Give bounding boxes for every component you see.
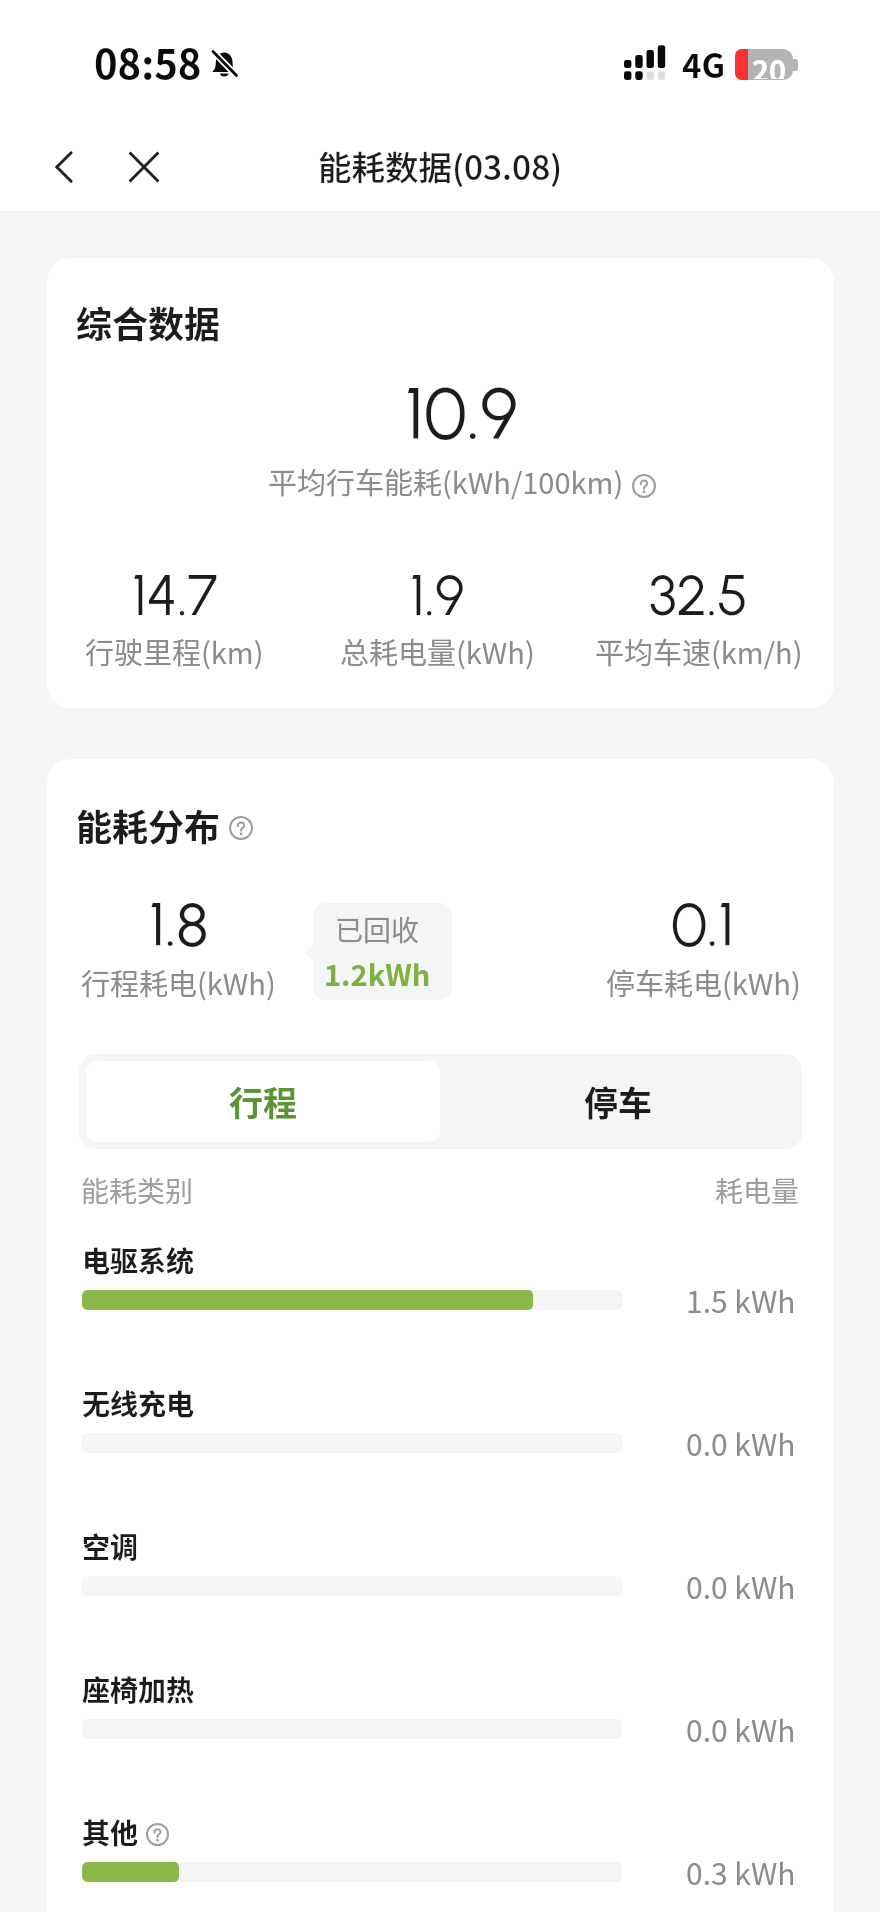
staticText: 平均行车能耗(kWh/100km) [268, 460, 624, 502]
staticText: 0.3 kWh [686, 1850, 796, 1893]
staticText: 1.8 [149, 887, 209, 960]
button[interactable]: 停车 [440, 1061, 795, 1142]
staticText: 能耗类别 [81, 1170, 194, 1211]
staticText: 10.9 [405, 370, 518, 456]
staticText: 0.1 [671, 887, 735, 960]
staticText: 行驶里程(km) [85, 630, 264, 672]
button[interactable]: Close [113, 136, 175, 198]
staticText: 0.0 kWh [686, 1564, 796, 1607]
staticText: 1.2kWh [324, 952, 431, 994]
button[interactable]: 电驱系统 [47, 1240, 834, 1383]
button[interactable]: Help [229, 816, 253, 840]
staticText: 停车 [584, 1077, 652, 1126]
staticText: 能耗数据(03.08) [318, 141, 563, 190]
button[interactable]: 无线充电 [47, 1383, 834, 1526]
staticText: 0.0 kWh [686, 1707, 796, 1750]
staticText: 总耗电量(kWh) [340, 630, 535, 672]
staticText: 08:58 [94, 33, 202, 91]
staticText: 14.7 [132, 562, 218, 629]
staticText: 1.9 [410, 562, 465, 629]
staticText: 座椅加热 [82, 1669, 195, 1710]
button[interactable]: Help [146, 1823, 169, 1846]
button[interactable]: 行程 [86, 1061, 440, 1142]
staticText: 0.0 kWh [686, 1421, 796, 1464]
staticText: 综合数据 [76, 296, 221, 348]
staticText: 4G [682, 40, 726, 88]
staticText: 行程 [229, 1077, 297, 1126]
button[interactable]: 空调 [47, 1526, 834, 1669]
staticText: 已回收 [335, 909, 420, 950]
staticText: 能耗分布 [76, 799, 221, 851]
staticText: 20 [752, 48, 787, 79]
staticText: 无线充电 [82, 1383, 195, 1424]
staticText: 电驱系统 [82, 1240, 195, 1281]
staticText: 平均车速(km/h) [595, 630, 803, 672]
staticText: 其他 [82, 1812, 139, 1853]
staticText: 耗电量 [715, 1170, 800, 1211]
button[interactable]: Back [34, 136, 96, 198]
button[interactable]: Help [632, 474, 656, 498]
staticText: 行程耗电(kWh) [81, 961, 276, 1003]
staticText: 1.5 kWh [686, 1278, 796, 1321]
staticText: 停车耗电(kWh) [606, 961, 801, 1003]
button[interactable]: 座椅加热 [47, 1669, 834, 1812]
button[interactable]: 其他 [47, 1812, 834, 1912]
staticText: 空调 [82, 1526, 139, 1567]
staticText: 32.5 [649, 562, 749, 629]
